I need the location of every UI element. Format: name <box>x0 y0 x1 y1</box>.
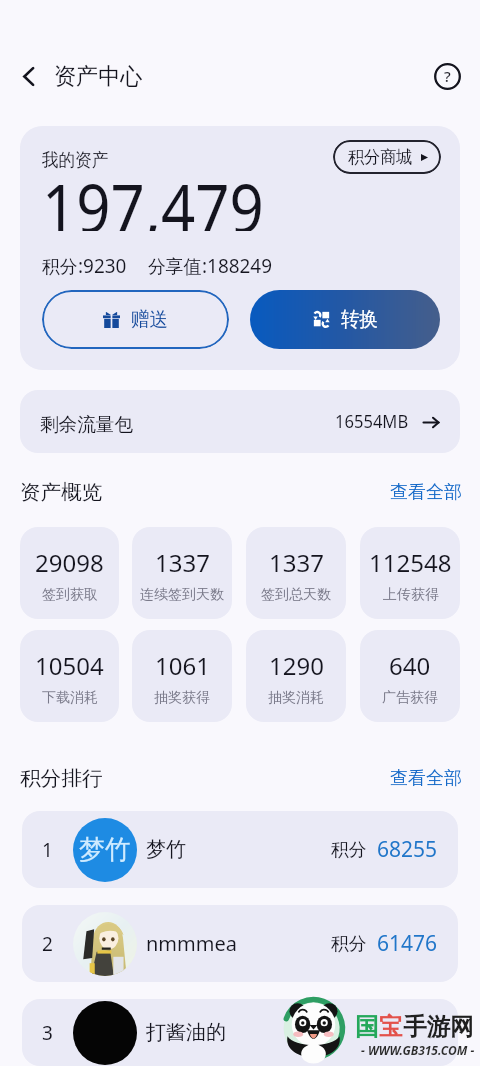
staticText: - WWW.GB315.COM - <box>361 1042 475 1058</box>
staticText: 手游网 <box>403 1012 474 1042</box>
staticText: 61476 <box>377 929 438 958</box>
staticText: 梦竹 <box>146 837 186 862</box>
button[interactable]: 赠送 <box>42 290 229 349</box>
button[interactable]: 1290 <box>246 630 346 722</box>
staticText: 剩余流量包 <box>40 413 133 437</box>
button[interactable]: 640 <box>360 630 460 722</box>
button[interactable]: 3 <box>22 999 458 1066</box>
button[interactable]: 1337 <box>246 527 346 619</box>
staticText: 打酱油的 <box>146 1020 226 1045</box>
staticText: 我的资产 <box>42 149 108 172</box>
button[interactable]: 1061 <box>132 630 232 722</box>
staticText: 1290 <box>269 649 324 682</box>
staticText: 梦竹 <box>79 833 131 867</box>
staticText: 连续签到天数 <box>140 586 224 604</box>
staticText: 宝 <box>379 1012 402 1042</box>
button[interactable]: 2 <box>22 905 458 982</box>
staticText: 10504 <box>35 649 104 682</box>
staticText: 积分商城 <box>348 146 412 168</box>
staticText: 资产中心 <box>54 62 142 91</box>
staticText: nmmmea <box>146 930 237 957</box>
staticText: 积分排行 <box>20 766 102 791</box>
staticText: 查看全部 <box>390 767 462 790</box>
staticText: 1061 <box>155 649 210 682</box>
staticText: 抽奖获得 <box>154 689 210 707</box>
staticText: 下载消耗 <box>42 689 98 707</box>
staticText: 赠送 <box>131 307 168 332</box>
staticText: 640 <box>389 649 431 682</box>
button[interactable]: 查看全部 <box>390 767 462 790</box>
staticText: 16554MB <box>335 409 409 434</box>
button[interactable]: 转换 <box>250 290 440 349</box>
button[interactable]: 29098 <box>20 527 119 619</box>
staticText: 查看全部 <box>390 481 462 504</box>
staticText: 积分 <box>331 838 366 861</box>
staticText: 抽奖消耗 <box>268 689 324 707</box>
staticText: 1337 <box>269 546 324 579</box>
staticText: 签到获取 <box>42 586 98 604</box>
staticText: 197,479 <box>42 161 264 231</box>
staticText: 1337 <box>155 546 210 579</box>
staticText: :9230 <box>78 252 126 278</box>
button[interactable]: Help <box>429 58 465 94</box>
staticText: 国 <box>355 1012 378 1042</box>
staticText: 分享值 <box>148 255 202 278</box>
staticText: 签到总天数 <box>261 586 331 604</box>
button[interactable]: Back <box>8 56 48 96</box>
button[interactable]: 剩余流量包 <box>20 390 460 453</box>
staticText: 1 <box>42 836 53 863</box>
staticText: 上传获得 <box>383 586 439 604</box>
staticText: 积分 <box>42 255 77 278</box>
staticText: 68255 <box>377 835 438 864</box>
staticText: 29098 <box>35 546 104 579</box>
button[interactable]: 112548 <box>360 527 460 619</box>
staticText: :188249 <box>202 252 273 278</box>
staticText: 2 <box>42 930 53 957</box>
button[interactable]: 查看全部 <box>390 481 462 504</box>
staticText: 112548 <box>369 546 452 579</box>
button[interactable]: 积分商城 <box>333 140 441 174</box>
button[interactable]: 1 <box>22 811 458 888</box>
staticText: 3 <box>42 1019 53 1046</box>
staticText: 资产概览 <box>20 480 102 505</box>
button[interactable]: 1337 <box>132 527 232 619</box>
staticText: 积分 <box>331 932 366 955</box>
staticText: 广告获得 <box>382 689 438 707</box>
staticText: ? <box>444 66 451 86</box>
button[interactable]: 10504 <box>20 630 119 722</box>
staticText: 转换 <box>341 307 378 332</box>
